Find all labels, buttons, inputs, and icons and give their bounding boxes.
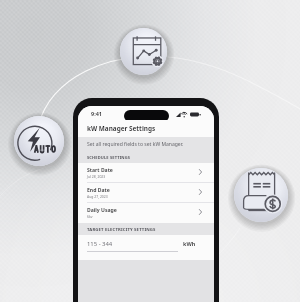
- button[interactable]: Schedule analytics: [113, 21, 174, 82]
- staticText: SCHEDULE SETTINGS: [87, 155, 131, 160]
- button[interactable]: Daily Usage: [78, 203, 214, 223]
- staticText: Jul 28, 2023: [87, 174, 106, 179]
- staticText: Start Date: [87, 167, 113, 174]
- staticText: TARGET ELECTRICITY SETTINGS: [87, 226, 156, 232]
- button[interactable]: Auto energy mode: [7, 109, 71, 173]
- staticText: Aug 27, 2023: [87, 194, 108, 199]
- staticText: Set all required fields to set kW Manage…: [87, 141, 184, 148]
- staticText: End Date: [87, 187, 110, 194]
- staticText: kW Manager Settings: [87, 124, 156, 133]
- button[interactable]: End Date: [78, 183, 214, 203]
- button[interactable]: Billing: [227, 161, 295, 229]
- staticText: 115 - 344: [87, 240, 113, 248]
- staticText: kWh: [183, 240, 196, 247]
- staticText: 9:41: [91, 110, 102, 117]
- staticText: Daily Usage: [87, 207, 117, 214]
- staticText: 6kv: [87, 214, 93, 219]
- button[interactable]: Start Date: [78, 163, 214, 183]
